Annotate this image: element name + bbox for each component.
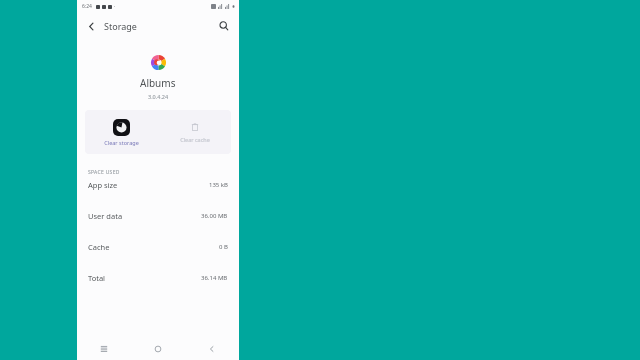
button[interactable]: Total [77, 271, 239, 302]
button[interactable]: Back [185, 338, 239, 360]
staticText: App size [88, 180, 118, 190]
staticText: 135 kB [209, 181, 228, 189]
staticText: Cache [88, 242, 110, 252]
staticText: 6:24 [82, 3, 92, 10]
staticText: Storage [104, 20, 137, 32]
staticText: Albums [140, 76, 176, 90]
button[interactable]: Clear storage [85, 110, 158, 154]
button[interactable]: Recent apps [77, 338, 131, 360]
button[interactable]: User data [77, 209, 239, 240]
staticText: User data [88, 211, 123, 221]
staticText: 3.0.4.24 [148, 93, 169, 100]
staticText: Clear storage [104, 139, 139, 146]
staticText: 0 B [219, 243, 228, 251]
staticText: 36.14 MB [201, 274, 228, 282]
staticText: 36.00 MB [201, 212, 228, 220]
button[interactable]: Search [214, 16, 234, 36]
button[interactable]: Home [131, 338, 185, 360]
button[interactable]: App size [77, 178, 239, 209]
staticText: Total [88, 273, 106, 283]
staticText: · [114, 3, 116, 10]
button[interactable]: Cache [77, 240, 239, 271]
button[interactable]: Clear cache [158, 110, 231, 154]
staticText: Clear cache [180, 136, 210, 143]
staticText: SPACE USED [88, 169, 120, 176]
button[interactable]: Back [81, 16, 101, 36]
